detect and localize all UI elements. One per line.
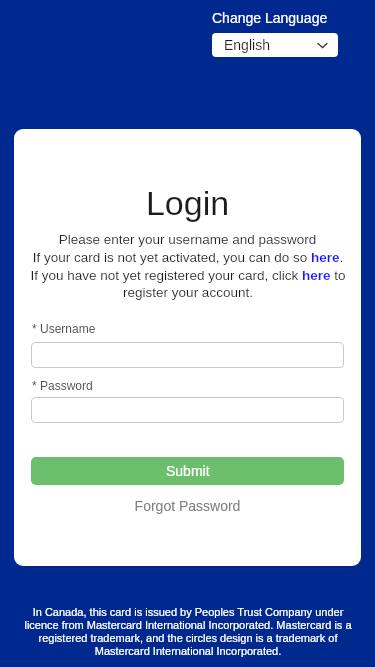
- staticText: English: [224, 37, 270, 53]
- staticText: In Canada, this card is issued by People…: [24, 606, 352, 658]
- staticText: Change Language: [212, 10, 328, 26]
- button[interactable]: If your card is not yet activated, you c…: [18, 250, 358, 299]
- button[interactable]: English: [212, 33, 338, 57]
- button[interactable]: Submit: [31, 457, 344, 485]
- button[interactable]: [31, 397, 344, 423]
- staticText: * Password: [32, 379, 93, 392]
- staticText: Login: [31, 184, 344, 222]
- staticText: Submit: [166, 463, 210, 479]
- button[interactable]: Forgot Password: [31, 498, 344, 514]
- staticText: * Username: [32, 322, 96, 335]
- staticText: Please enter your username and password: [31, 232, 344, 247]
- button[interactable]: [31, 342, 344, 368]
